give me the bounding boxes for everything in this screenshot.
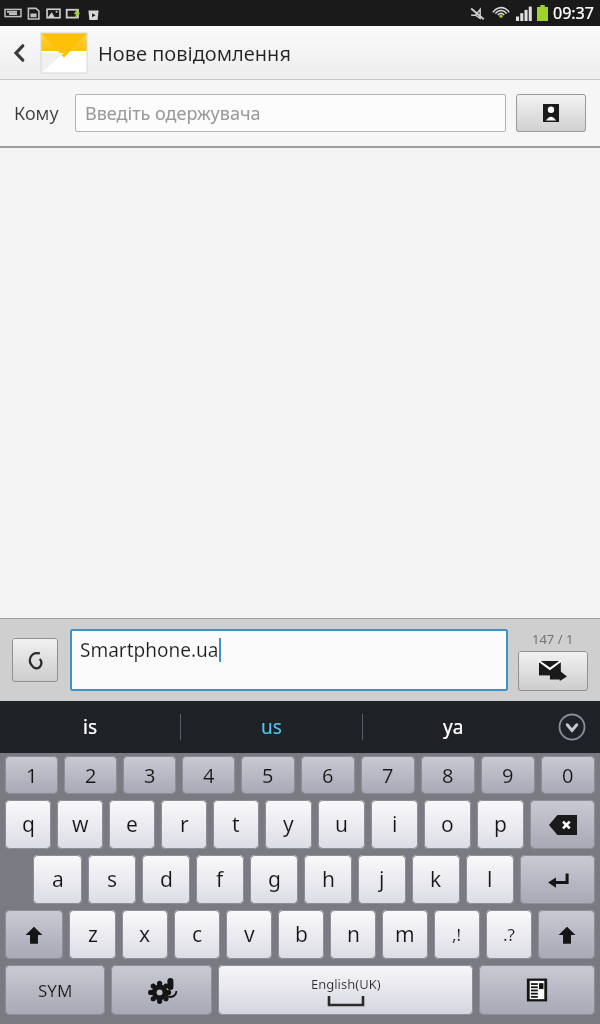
button[interactable]: v — [226, 910, 272, 959]
staticText: w — [72, 810, 89, 839]
staticText: b — [295, 920, 308, 949]
button[interactable]: Space — [218, 965, 473, 1015]
button[interactable]: k — [412, 855, 460, 904]
staticText: d — [160, 865, 173, 894]
staticText: Кому — [14, 101, 59, 126]
staticText: h — [322, 865, 335, 894]
button[interactable]: ,! — [434, 910, 480, 959]
staticText: 5 — [262, 762, 274, 789]
button[interactable]: t — [213, 800, 259, 849]
staticText: j — [379, 865, 385, 894]
button[interactable]: 5 — [241, 756, 295, 794]
button[interactable]: 4 — [182, 756, 235, 794]
button[interactable]: f — [196, 855, 244, 904]
button[interactable]: 1 — [5, 756, 58, 794]
staticText: English(UK) — [311, 975, 381, 993]
staticText: o — [441, 810, 454, 839]
staticText: g — [268, 865, 281, 894]
button[interactable]: 0 — [541, 756, 595, 794]
staticText: 9 — [502, 762, 514, 789]
staticText: us — [261, 714, 282, 740]
button[interactable]: ya — [363, 701, 544, 753]
staticText: r — [180, 810, 189, 839]
button[interactable]: h — [304, 855, 352, 904]
button[interactable]: d — [142, 855, 190, 904]
button[interactable]: 3 — [123, 756, 176, 794]
staticText: x — [139, 920, 151, 949]
button[interactable]: o — [424, 800, 471, 849]
button[interactable]: i — [371, 800, 418, 849]
staticText: u — [335, 810, 348, 839]
staticText: 1 — [26, 762, 38, 789]
button[interactable]: y — [265, 800, 312, 849]
button[interactable]: Smartphone.ua — [70, 629, 508, 691]
button[interactable]: m — [382, 910, 428, 959]
staticText: is — [83, 714, 98, 740]
button[interactable]: Settings — [111, 965, 212, 1015]
staticText: 09:37 — [553, 2, 594, 24]
button[interactable]: g — [250, 855, 298, 904]
staticText: 3 — [144, 762, 156, 789]
button[interactable]: 9 — [481, 756, 535, 794]
button[interactable]: Contacts — [516, 94, 586, 132]
button[interactable]: e — [109, 800, 155, 849]
button[interactable]: us — [181, 701, 362, 753]
button[interactable]: Send — [518, 651, 588, 691]
button[interactable]: u — [318, 800, 365, 849]
staticText: y — [283, 810, 294, 839]
staticText: 6 — [322, 762, 334, 789]
button[interactable]: Attach — [12, 638, 58, 682]
button[interactable]: a — [33, 855, 82, 904]
staticText: .? — [503, 923, 515, 946]
button[interactable]: Enter — [520, 855, 595, 904]
button[interactable]: 8 — [421, 756, 475, 794]
staticText: ya — [443, 714, 464, 740]
staticText: ,! — [452, 923, 462, 946]
button[interactable]: x — [122, 910, 168, 959]
staticText: i — [392, 810, 398, 839]
button[interactable]: Clipboard — [479, 965, 595, 1015]
staticText: q — [22, 810, 35, 839]
button[interactable]: 7 — [361, 756, 415, 794]
staticText: v — [244, 920, 255, 949]
staticText: 2 — [85, 762, 97, 789]
button[interactable]: Back — [0, 26, 40, 80]
button[interactable]: w — [57, 800, 103, 849]
staticText: 0 — [562, 762, 574, 789]
button[interactable]: 6 — [301, 756, 355, 794]
staticText: c — [192, 920, 203, 949]
button[interactable]: Shift — [538, 910, 595, 959]
button[interactable]: z — [69, 910, 116, 959]
button[interactable]: l — [466, 855, 514, 904]
button[interactable]: s — [88, 855, 136, 904]
staticText: 8 — [442, 762, 454, 789]
staticText: l — [487, 865, 493, 894]
button[interactable]: Delete — [530, 800, 595, 849]
button[interactable]: q — [5, 800, 51, 849]
button[interactable]: Shift — [5, 910, 63, 959]
button[interactable]: p — [477, 800, 524, 849]
staticText: Smartphone.ua — [80, 637, 219, 663]
button[interactable]: r — [161, 800, 207, 849]
staticText: t — [232, 810, 240, 839]
button[interactable]: .? — [486, 910, 532, 959]
button[interactable]: SYM — [5, 965, 105, 1015]
staticText: k — [430, 865, 442, 894]
button[interactable]: j — [358, 855, 406, 904]
button[interactable]: is — [0, 701, 180, 753]
staticText: m — [395, 920, 415, 949]
staticText: Введіть одержувача — [85, 101, 261, 126]
staticText: SYM — [38, 979, 73, 1002]
staticText: 4 — [203, 762, 215, 789]
button[interactable]: Expand suggestions — [544, 701, 600, 753]
staticText: f — [216, 865, 224, 894]
button[interactable]: c — [174, 910, 220, 959]
button[interactable]: n — [330, 910, 376, 959]
staticText: 147 / 1 — [532, 630, 574, 648]
button[interactable]: Введіть одержувача — [75, 94, 506, 132]
staticText: n — [347, 920, 360, 949]
button[interactable]: 2 — [64, 756, 117, 794]
button[interactable]: b — [278, 910, 324, 959]
staticText: 7 — [382, 762, 394, 789]
staticText: s — [107, 865, 118, 894]
